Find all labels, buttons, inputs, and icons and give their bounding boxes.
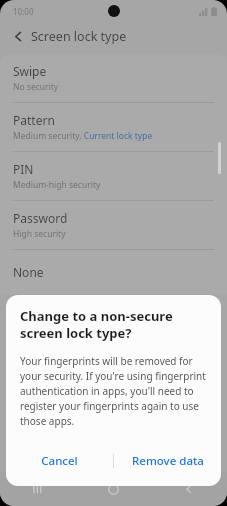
staticText: PIN <box>13 161 34 177</box>
staticText: Screen lock type <box>31 28 127 45</box>
staticText: Pattern <box>13 112 55 128</box>
button[interactable]: Recent apps <box>0 472 75 506</box>
button[interactable]: Navigate up <box>8 26 28 46</box>
staticText: Remove data <box>132 453 204 469</box>
button[interactable]: Remove data <box>114 446 221 476</box>
staticText: 10:00 <box>13 6 34 17</box>
button[interactable]: Swipe <box>0 54 227 102</box>
button[interactable]: Home <box>75 472 151 506</box>
staticText: No security <box>13 81 59 93</box>
staticText: Medium-high security <box>13 179 101 191</box>
button[interactable]: Back <box>151 472 227 506</box>
staticText: Your fingerprints will be removed for yo… <box>20 354 207 428</box>
button[interactable]: None <box>0 250 227 294</box>
staticText: Change to a non-secure screen lock type? <box>20 307 205 342</box>
button[interactable]: Cancel <box>6 446 113 476</box>
staticText: Medium security, Current lock type <box>13 130 153 142</box>
staticText: None <box>13 264 44 280</box>
staticText: Password <box>13 210 68 226</box>
staticText: Cancel <box>41 453 78 469</box>
button[interactable]: Password <box>0 201 227 249</box>
button[interactable]: Pattern <box>0 103 227 151</box>
staticText: High security <box>13 228 66 240</box>
staticText: Swipe <box>13 63 47 79</box>
button[interactable]: PIN <box>0 152 227 200</box>
